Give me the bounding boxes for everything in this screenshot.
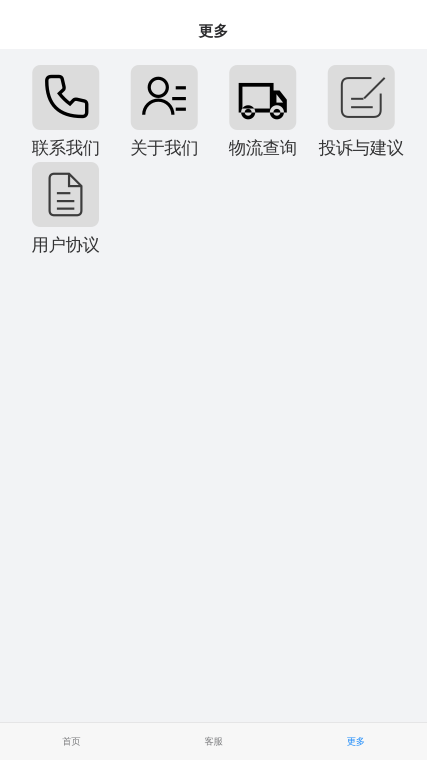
button[interactable]: 首页 xyxy=(0,723,142,760)
button[interactable]: 更多 xyxy=(285,723,427,760)
staticText: 联系我们 xyxy=(32,137,100,159)
staticText: 更多 xyxy=(347,736,365,747)
staticText: 更多 xyxy=(198,22,228,40)
staticText: 投诉与建议 xyxy=(319,137,404,159)
button[interactable]: 关于我们 xyxy=(116,65,212,157)
button[interactable]: 物流查询 xyxy=(215,65,311,157)
staticText: 物流查询 xyxy=(229,137,297,159)
staticText: 首页 xyxy=(62,736,80,747)
button[interactable]: 用户协议 xyxy=(17,162,113,254)
button[interactable]: 客服 xyxy=(142,723,285,760)
staticText: 用户协议 xyxy=(31,234,99,256)
staticText: 关于我们 xyxy=(130,137,198,159)
button[interactable]: 联系我们 xyxy=(18,65,114,157)
staticText: 客服 xyxy=(204,736,222,747)
button[interactable]: 投诉与建议 xyxy=(313,65,409,157)
